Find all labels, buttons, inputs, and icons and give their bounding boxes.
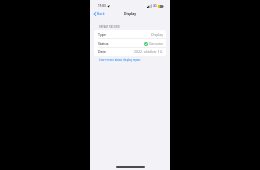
- staticText: Back: [97, 11, 105, 16]
- staticText: Genuine: [149, 41, 163, 46]
- staticText: Display: [124, 11, 137, 16]
- staticText: 11:03: [98, 4, 106, 8]
- button[interactable]: Type: [94, 30, 166, 39]
- staticText: Status: [98, 41, 109, 46]
- button[interactable]: Back: [93, 10, 106, 17]
- staticText: 4G: [153, 4, 157, 8]
- staticText: 2022. október 14.: [134, 49, 163, 54]
- button[interactable]: Learn more about display repair.: [99, 58, 141, 62]
- staticText: Type: [98, 32, 106, 37]
- button[interactable]: Status: [94, 39, 166, 48]
- button[interactable]: Date: [94, 48, 166, 56]
- staticText: Display: [151, 32, 163, 37]
- staticText: Date: [98, 49, 106, 54]
- staticText: REPAIR RECORD: [99, 25, 120, 29]
